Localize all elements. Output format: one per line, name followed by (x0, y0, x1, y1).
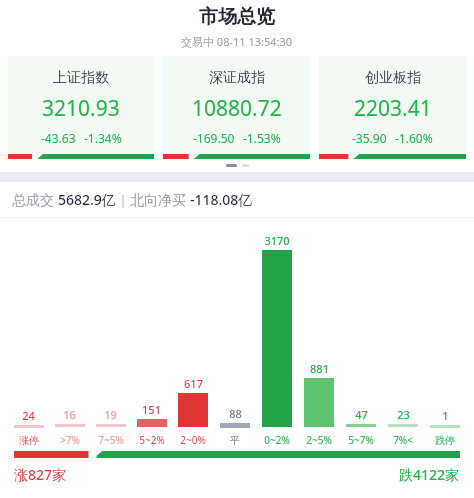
staticText: | (116, 191, 130, 209)
staticText: 47 (355, 407, 368, 422)
staticText: -169.50 (193, 130, 235, 146)
staticText: 创业板指 (365, 69, 421, 87)
staticText: -118.08亿 (190, 190, 253, 209)
staticText: 16 (63, 407, 76, 422)
staticText: 3210.93 (42, 94, 120, 123)
button[interactable]: 3170 (256, 218, 298, 451)
staticText: 2~0% (180, 433, 206, 447)
staticText: 深证成指 (209, 69, 265, 87)
staticText: 2~5% (306, 433, 332, 447)
staticText: -35.90 (352, 130, 387, 146)
staticText: 151 (142, 402, 161, 417)
button[interactable]: 19 (90, 218, 131, 451)
staticText: 5~7% (348, 433, 374, 447)
staticText: 7~5% (98, 433, 124, 447)
staticText: -1.53% (243, 130, 281, 146)
staticText: >7% (60, 433, 80, 447)
staticText: 19 (104, 407, 117, 422)
staticText: 5~2% (139, 433, 165, 447)
staticText: 交易中 08-11 13:54:30 (181, 34, 293, 49)
staticText: 3170 (264, 233, 290, 248)
button[interactable]: 16 (49, 218, 90, 451)
staticText: 5682.9亿 (58, 190, 116, 209)
button[interactable]: 617 (172, 218, 214, 451)
staticText: -1.34% (84, 130, 122, 146)
staticText: 881 (310, 361, 329, 376)
staticText: 市场总览 (199, 5, 275, 29)
button[interactable]: 47 (340, 218, 382, 451)
staticText: 跌停 (435, 434, 455, 447)
staticText: 24 (22, 408, 35, 423)
staticText: 2203.41 (354, 94, 432, 123)
button[interactable]: 881 (298, 218, 340, 451)
staticText: 平 (230, 434, 240, 447)
staticText: -43.63 (41, 130, 76, 146)
staticText: 1 (442, 408, 449, 423)
button[interactable]: 1 (424, 218, 466, 451)
staticText: 7%< (393, 433, 413, 447)
button[interactable]: 24 (8, 218, 49, 451)
staticText: 10880.72 (192, 94, 282, 123)
staticText: 跌4122家 (399, 465, 460, 484)
staticText: 涨停 (19, 434, 39, 447)
staticText: -1.60% (395, 130, 433, 146)
staticText: 0~2% (264, 433, 290, 447)
staticText: 23 (397, 407, 410, 422)
staticText: 88 (229, 406, 242, 421)
button[interactable]: 23 (382, 218, 424, 451)
staticText: 涨827家 (14, 465, 67, 484)
button[interactable]: 深证成指 (163, 56, 310, 159)
button[interactable]: 151 (131, 218, 172, 451)
staticText: 上证指数 (53, 69, 109, 87)
button[interactable]: 创业板指 (319, 56, 466, 159)
staticText: 总成交 (12, 190, 58, 209)
staticText: 北向净买 (130, 190, 190, 209)
staticText: 617 (184, 376, 203, 391)
button[interactable]: 88 (214, 218, 256, 451)
button[interactable]: 上证指数 (8, 56, 154, 159)
